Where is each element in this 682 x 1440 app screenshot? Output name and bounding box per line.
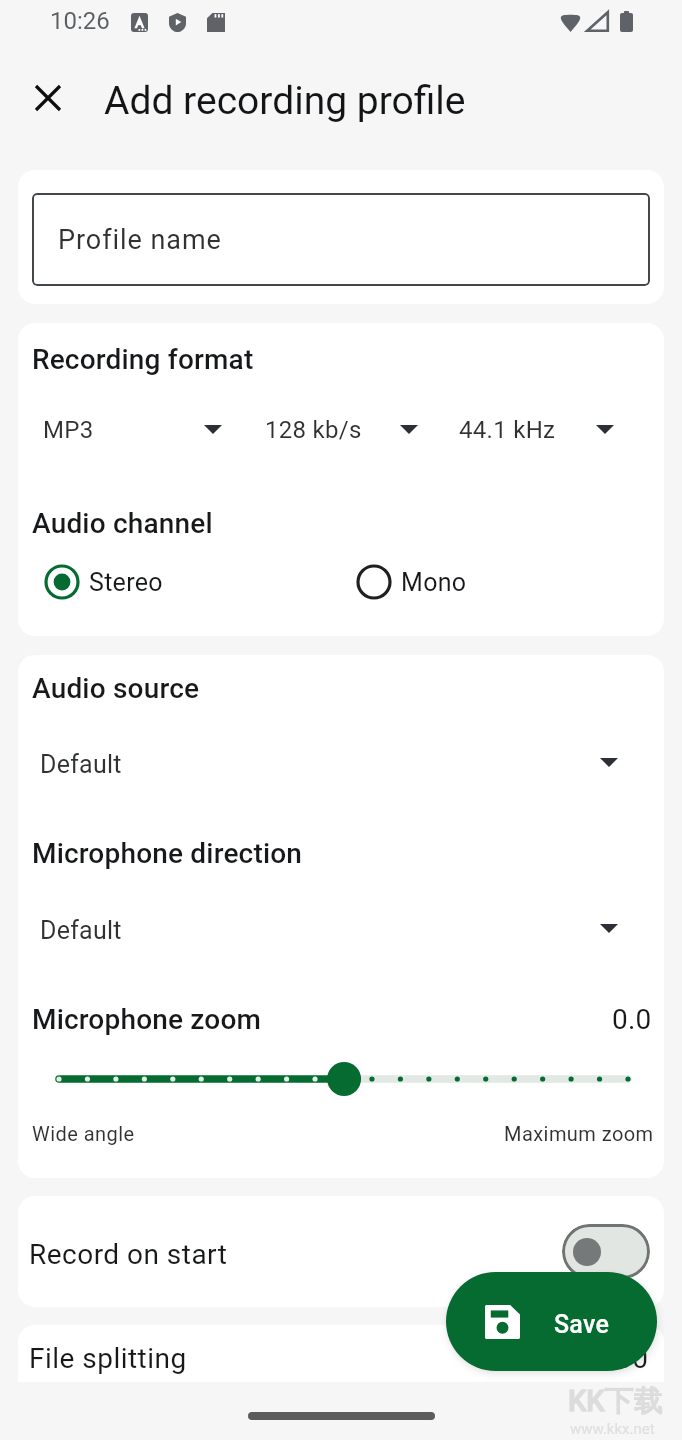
button[interactable] xyxy=(18,1196,664,1307)
staticText: MP3 xyxy=(43,416,94,444)
staticText: Mono xyxy=(401,568,467,597)
staticText: Microphone zoom xyxy=(32,1003,262,1036)
button[interactable]: Mono xyxy=(356,556,536,608)
button[interactable]: Stereo xyxy=(44,556,354,608)
button[interactable]: Close xyxy=(18,68,78,128)
staticText: Stereo xyxy=(89,568,163,597)
button[interactable]: 44.1 kHz xyxy=(449,405,627,457)
staticText: Add recording profile xyxy=(104,78,466,124)
button[interactable]: Save xyxy=(446,1272,657,1371)
staticText: Profile name xyxy=(58,224,222,256)
staticText: www.kkx.net xyxy=(570,1420,670,1438)
staticText: Wide angle xyxy=(32,1122,135,1145)
staticText: Maximum zoom xyxy=(504,1122,664,1145)
staticText: File splitting xyxy=(29,1342,187,1375)
staticText: 30 xyxy=(616,1342,650,1375)
staticText: Record on start xyxy=(29,1238,228,1271)
staticText: Recording format xyxy=(32,343,254,376)
staticText: 128 kb/s xyxy=(265,416,362,444)
button[interactable]: Default xyxy=(18,738,664,790)
button[interactable]: 128 kb/s xyxy=(255,405,431,457)
button[interactable]: Record on start toggle xyxy=(562,1224,650,1279)
staticText: Default xyxy=(40,750,122,779)
staticText: Audio source xyxy=(32,672,200,705)
staticText: Default xyxy=(40,916,122,945)
button[interactable]: Profile name xyxy=(32,193,650,286)
staticText: Save xyxy=(554,1310,610,1339)
staticText: Microphone direction xyxy=(32,837,303,870)
button[interactable] xyxy=(18,1057,664,1101)
staticText: 10:26 xyxy=(50,7,110,35)
staticText: 0.0 xyxy=(612,1003,664,1036)
staticText: 44.1 kHz xyxy=(459,416,556,444)
staticText: Audio channel xyxy=(32,507,213,540)
button[interactable] xyxy=(18,1325,664,1382)
button[interactable]: MP3 xyxy=(33,405,235,457)
staticText: KK下载 xyxy=(568,1383,680,1420)
button[interactable]: Default xyxy=(18,904,664,956)
